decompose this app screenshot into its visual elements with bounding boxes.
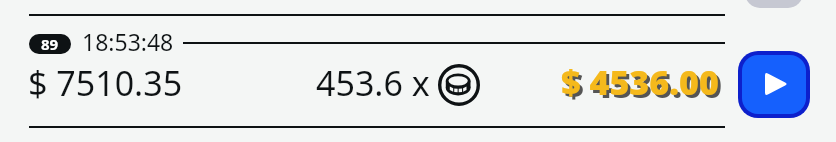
staticText: $ 4536.00 <box>561 59 719 105</box>
button[interactable]: 89 <box>29 34 71 54</box>
staticText: $ 7510.35 <box>28 60 183 106</box>
staticText: 89 <box>41 34 59 54</box>
staticText: $ 4536.00 <box>564 62 722 108</box>
staticText: 18:53:48 <box>82 26 174 57</box>
staticText: 453.6 x <box>316 60 430 106</box>
button[interactable]: Play <box>742 55 806 114</box>
